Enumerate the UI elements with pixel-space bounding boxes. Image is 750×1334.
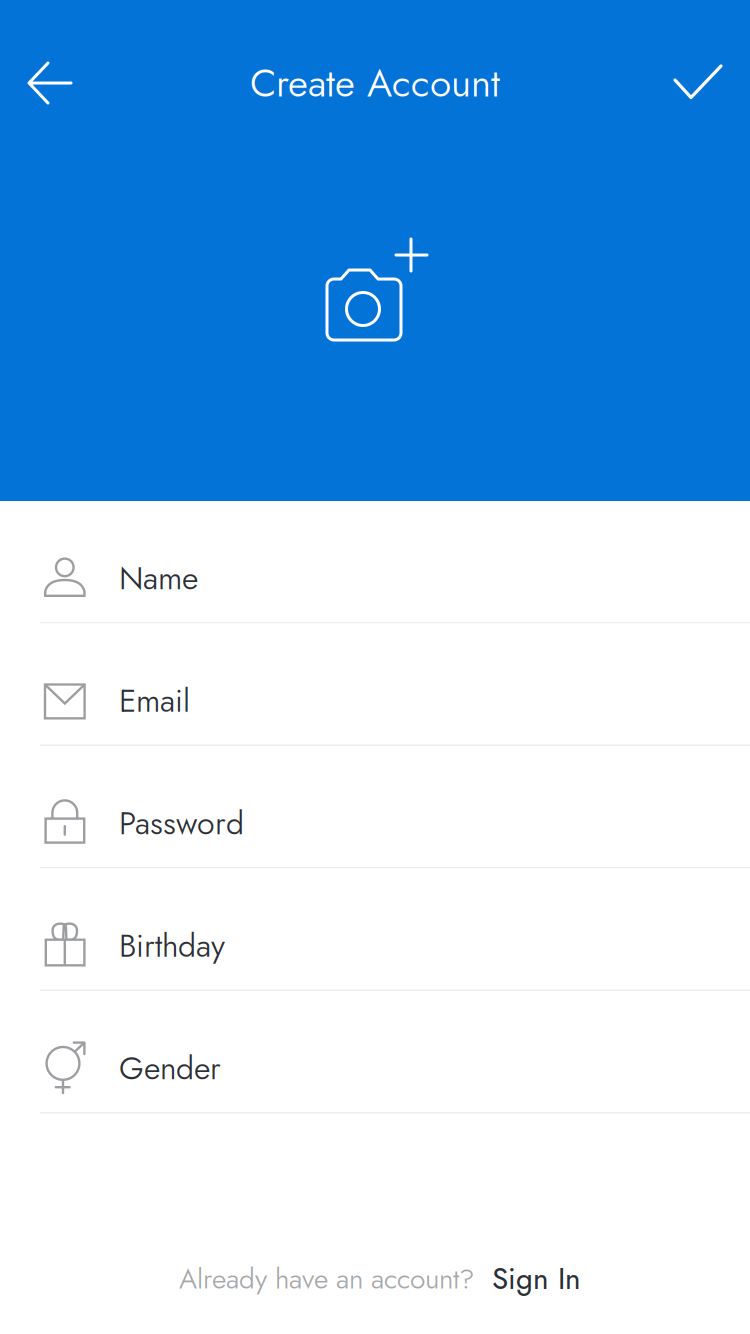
- staticText: Already have an account?: [179, 1259, 475, 1299]
- staticText: Birthday: [119, 922, 225, 969]
- staticText: Create Account: [250, 55, 500, 111]
- staticText: Gender: [119, 1045, 221, 1091]
- staticText: Sign In: [492, 1258, 581, 1300]
- button[interactable]: Back: [2, 35, 98, 131]
- button[interactable]: Already have an account?: [0, 1242, 750, 1316]
- button[interactable]: Add photo: [315, 230, 429, 346]
- staticText: Name: [119, 555, 198, 601]
- button[interactable]: Password: [0, 746, 750, 868]
- button[interactable]: Done: [650, 35, 746, 131]
- button[interactable]: Gender: [0, 991, 750, 1113]
- button[interactable]: Email: [0, 623, 750, 746]
- staticText: Email: [119, 677, 190, 724]
- staticText: Password: [119, 800, 244, 846]
- button[interactable]: Birthday: [0, 868, 750, 991]
- button[interactable]: Name: [0, 501, 750, 623]
